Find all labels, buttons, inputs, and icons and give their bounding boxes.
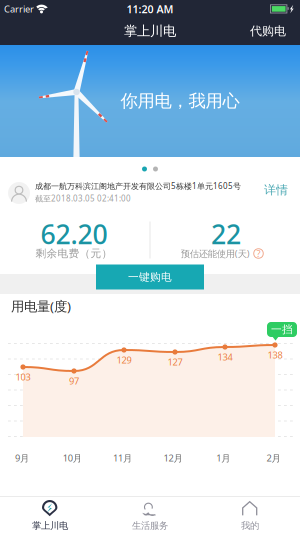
staticText: 134 [217, 351, 232, 363]
staticText: 掌上川电 [124, 23, 176, 39]
staticText: 12月 [163, 452, 182, 464]
button[interactable]: 生活服务 [100, 496, 200, 533]
staticText: 详情 [264, 183, 288, 197]
staticText: 截至2018.03.05 02:41:00 [35, 193, 131, 204]
staticText: 一键购电 [128, 270, 172, 283]
staticText: 103 [15, 371, 30, 383]
staticText: 22 [211, 216, 241, 252]
staticText: 你用电，我用心 [120, 90, 239, 112]
staticText: 62.20 [40, 216, 107, 252]
staticText: 我的 [241, 520, 259, 531]
button[interactable]: 我的 [200, 496, 300, 533]
staticText: 9月 [15, 452, 29, 464]
staticText: 11:20 AM [126, 2, 173, 16]
staticText: 预估还能使用(天) [181, 247, 250, 260]
staticText: 掌上川电 [32, 520, 68, 531]
staticText: Carrier [4, 3, 34, 15]
staticText: 11月 [113, 452, 132, 464]
staticText: 1月 [216, 452, 230, 464]
staticText: 成都一航万科滨江阁地产开发有限公司5栋楼1单元1605号 [35, 181, 241, 191]
staticText: 代购电 [250, 24, 286, 38]
staticText: ? [256, 247, 260, 260]
staticText: 138 [267, 349, 282, 361]
staticText: 127 [167, 356, 182, 368]
staticText: 97 [69, 375, 79, 387]
button[interactable]: 掌上川电 [0, 496, 100, 533]
staticText: 用电量(度) [11, 297, 71, 315]
button[interactable]: 一键购电 [96, 264, 204, 289]
staticText: 一挡 [271, 323, 293, 336]
staticText: 剩余电费（元） [35, 247, 112, 260]
staticText: 129 [116, 354, 131, 366]
button[interactable]: 详情 [258, 177, 294, 203]
staticText: 2月 [266, 452, 280, 464]
staticText: 生活服务 [132, 520, 168, 531]
button[interactable]: 代购电 [240, 17, 296, 45]
staticText: 10月 [63, 452, 82, 464]
